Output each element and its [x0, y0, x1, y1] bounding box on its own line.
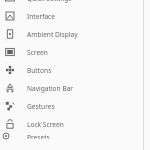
staticText: Buttons	[27, 66, 52, 75]
other: Lock Screen	[3, 117, 17, 131]
button[interactable]: Presets	[0, 133, 150, 139]
staticText: Lock Screen	[27, 120, 64, 129]
button[interactable]: Gestures	[0, 97, 150, 115]
other: Gestures	[3, 99, 17, 113]
staticText: Ambient Display	[27, 30, 78, 39]
other: Ambient Display	[3, 27, 17, 41]
button[interactable]: Quick Settings	[0, 0, 150, 7]
other: Interface	[3, 9, 17, 23]
staticText: Presets	[27, 133, 50, 139]
button[interactable]: Screen	[0, 43, 150, 61]
other: Quick Settings	[3, 0, 17, 5]
button[interactable]: Lock Screen	[0, 115, 150, 133]
staticText: Gestures	[27, 102, 55, 111]
other: Navigation Bar	[3, 81, 17, 95]
other: Screen	[3, 45, 17, 59]
staticText: Quick Settings	[27, 0, 72, 3]
button[interactable]: Navigation Bar	[0, 79, 150, 97]
button[interactable]: Ambient Display	[0, 25, 150, 43]
other: Presets	[3, 133, 17, 139]
other: Buttons	[3, 63, 17, 77]
staticText: Navigation Bar	[27, 84, 74, 93]
button[interactable]: Buttons	[0, 61, 150, 79]
staticText: Interface	[27, 12, 55, 21]
staticText: Screen	[27, 48, 48, 57]
button[interactable]: Interface	[0, 7, 150, 25]
